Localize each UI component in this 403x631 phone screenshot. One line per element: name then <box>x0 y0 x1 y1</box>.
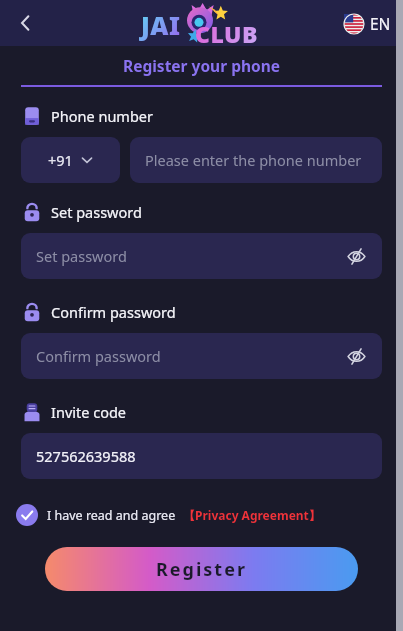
staticText: I have read and agree <box>47 507 176 524</box>
button[interactable]: Please enter the phone number <box>130 137 382 183</box>
staticText: Confirm password <box>51 302 176 322</box>
button[interactable]: Set password <box>21 233 382 279</box>
button[interactable]: EN <box>344 13 391 34</box>
staticText: Set password <box>51 202 142 222</box>
button[interactable]: I have read and agree <box>47 507 176 524</box>
staticText: Invite code <box>51 402 126 422</box>
button[interactable]: Confirm password <box>21 333 382 379</box>
staticText: Phone number <box>51 106 153 126</box>
button[interactable]: I have read and agree checkbox <box>16 504 38 526</box>
button[interactable]: +91 <box>21 137 120 183</box>
staticText: Set password <box>36 246 127 266</box>
button[interactable]: Toggle password visibility <box>343 243 369 269</box>
staticText: JAI <box>141 8 181 42</box>
staticText: Please enter the phone number <box>145 150 362 170</box>
button[interactable]: 【Privacy Agreement】 <box>183 507 321 523</box>
button[interactable]: Back <box>8 5 44 41</box>
staticText: Confirm password <box>36 346 161 366</box>
staticText: Register your phone <box>123 55 281 76</box>
staticText: CLUB <box>195 18 258 49</box>
button[interactable]: Toggle password visibility <box>343 343 369 369</box>
staticText: Register <box>156 557 247 582</box>
button[interactable]: JAI Club logo <box>135 1 265 45</box>
staticText: 527562639588 <box>36 446 136 466</box>
button[interactable]: Register <box>45 547 358 591</box>
staticText: +91 <box>48 150 73 170</box>
staticText: 【Privacy Agreement】 <box>183 507 321 523</box>
staticText: EN <box>370 13 391 34</box>
button[interactable]: 527562639588 <box>21 433 382 479</box>
